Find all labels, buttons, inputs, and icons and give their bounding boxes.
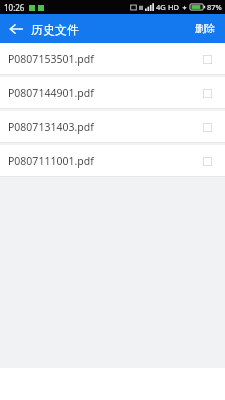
button[interactable]: Select P0807111001.pdf: [198, 152, 216, 170]
staticText: P0807131403.pdf: [8, 120, 94, 134]
staticText: 10:26: [4, 2, 25, 13]
button[interactable]: P0807131403.pdf: [0, 111, 225, 142]
button[interactable]: 删除: [185, 16, 225, 41]
button[interactable]: Back: [0, 17, 87, 41]
button[interactable]: Select P0807144901.pdf: [198, 84, 216, 102]
button[interactable]: Select P0807153501.pdf: [198, 50, 216, 68]
staticText: P0807111001.pdf: [8, 154, 94, 168]
staticText: P0807144901.pdf: [8, 86, 94, 100]
staticText: 87%: [207, 2, 222, 12]
staticText: HD: [168, 2, 180, 12]
staticText: 删除: [195, 22, 215, 35]
staticText: P0807153501.pdf: [8, 52, 94, 66]
button[interactable]: P0807111001.pdf: [0, 145, 225, 176]
button[interactable]: Select P0807131403.pdf: [198, 118, 216, 136]
staticText: ✦: [182, 4, 188, 11]
other: Back: [8, 21, 24, 37]
staticText: 4G: [156, 2, 166, 12]
staticText: 历史文件: [31, 22, 79, 37]
button[interactable]: P0807144901.pdf: [0, 77, 225, 108]
button[interactable]: P0807153501.pdf: [0, 43, 225, 74]
